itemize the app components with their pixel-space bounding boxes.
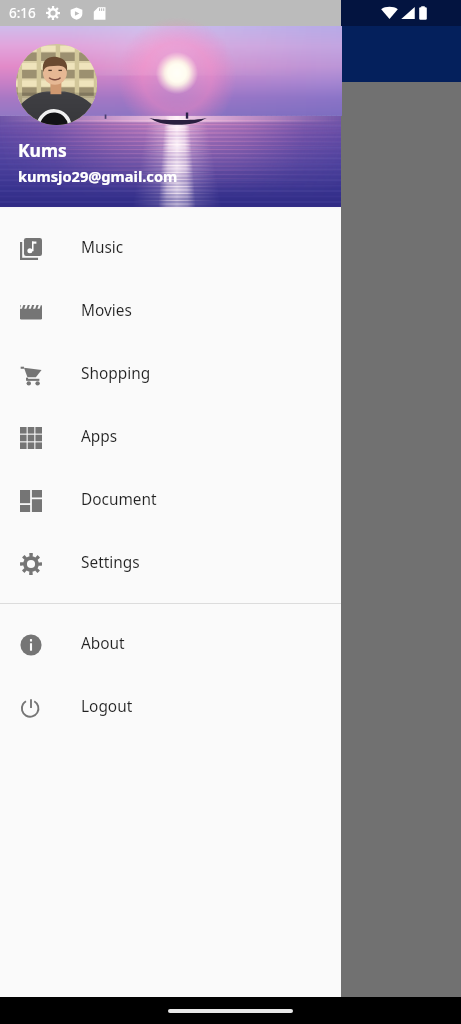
staticText: Shopping xyxy=(81,363,151,384)
button[interactable]: Document xyxy=(0,469,341,532)
staticText: Settings xyxy=(81,552,140,573)
staticText: Movies xyxy=(81,300,132,321)
button[interactable]: Settings xyxy=(0,532,341,595)
button[interactable]: Logout xyxy=(0,676,341,739)
staticText: Document xyxy=(81,489,157,510)
button[interactable]: Apps xyxy=(0,406,341,469)
button[interactable]: Shopping xyxy=(0,343,341,406)
button[interactable]: Movies xyxy=(0,280,341,343)
staticText: Apps xyxy=(81,426,118,447)
button[interactable]: Music xyxy=(0,217,341,280)
staticText: 6:16 xyxy=(9,4,36,22)
staticText: About xyxy=(81,633,125,654)
staticText: Kums xyxy=(18,138,67,162)
staticText: Logout xyxy=(81,696,133,717)
staticText: kumsjo29@gmail.com xyxy=(18,166,178,186)
button[interactable]: About xyxy=(0,613,341,676)
staticText: Music xyxy=(81,237,124,258)
